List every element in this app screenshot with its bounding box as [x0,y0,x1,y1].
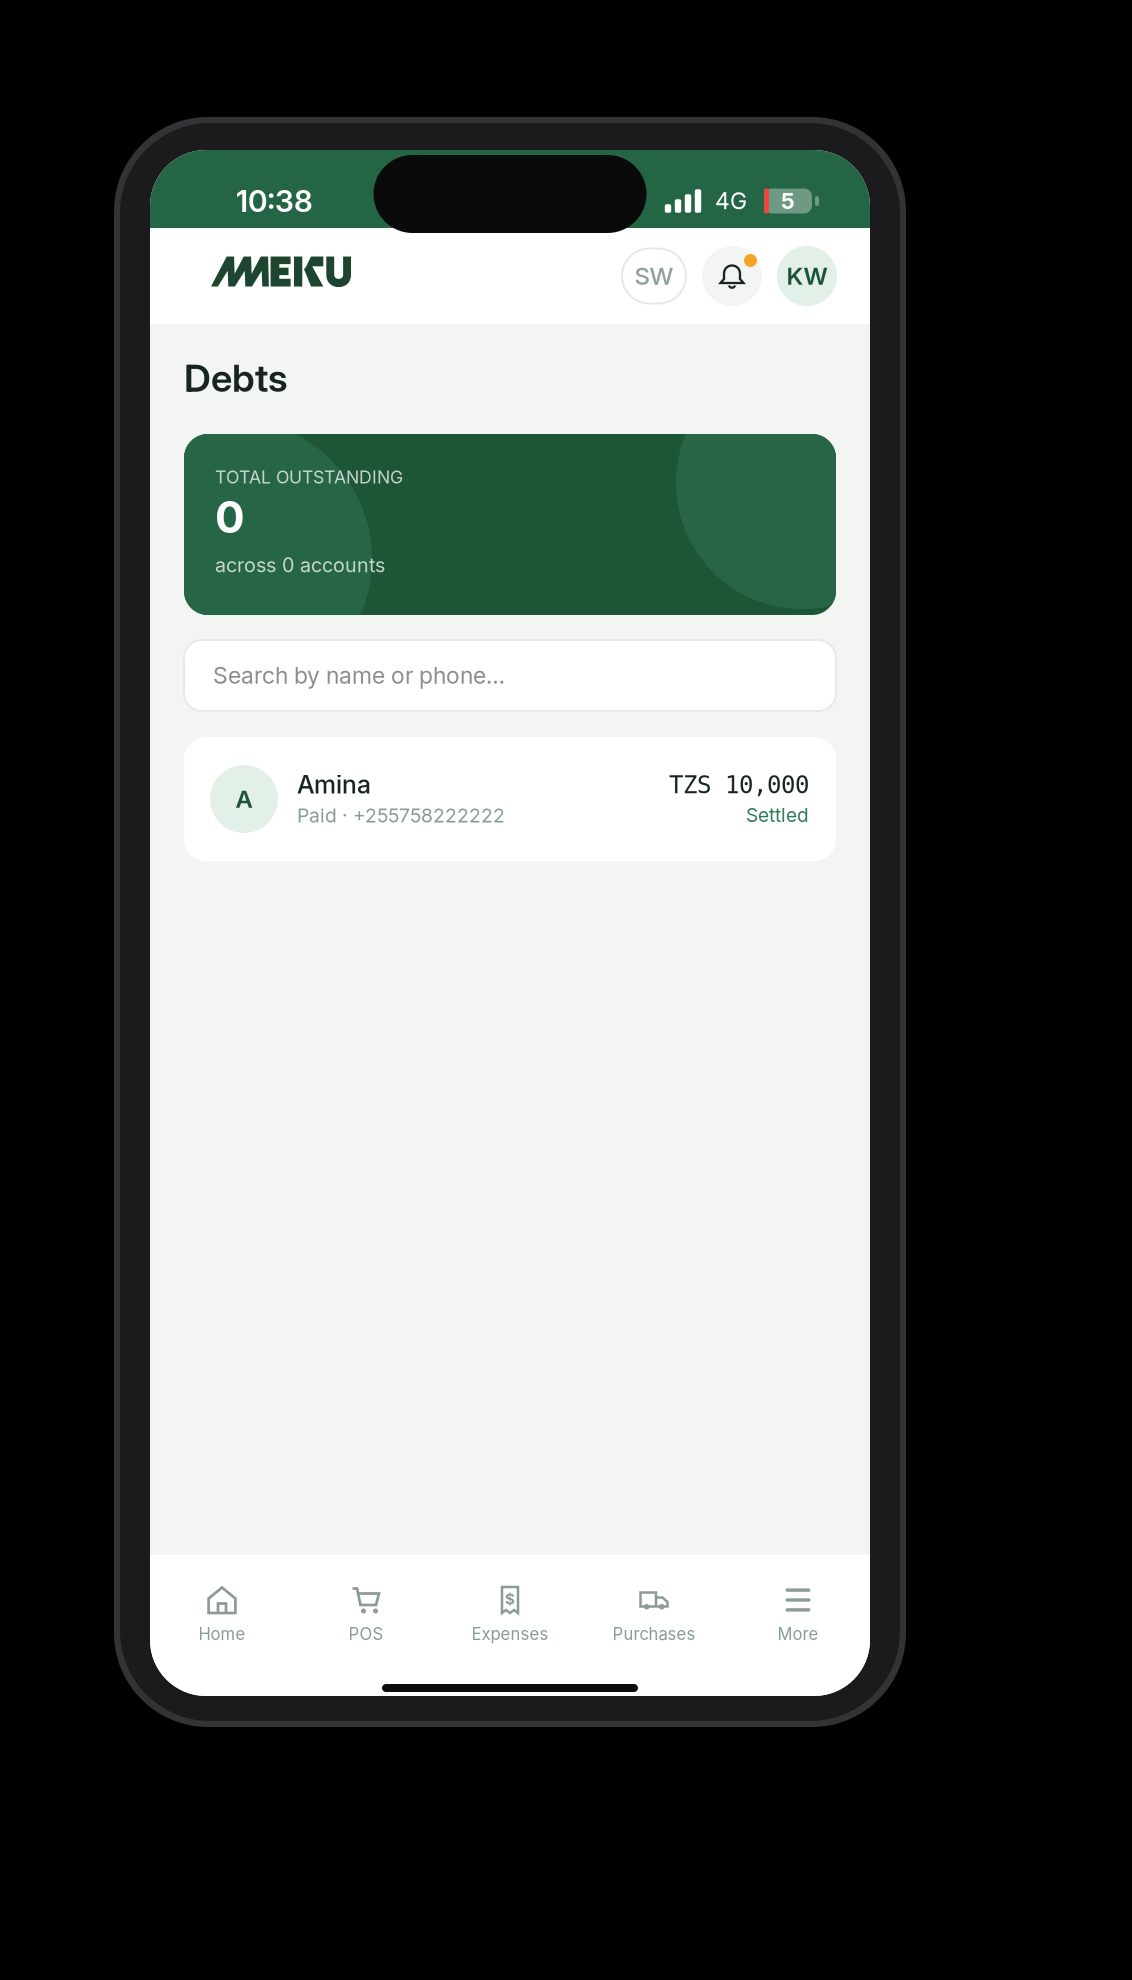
staticText: Debts [184,355,288,401]
button[interactable]: Home [150,1585,294,1649]
staticText: Purchases [612,1624,695,1644]
staticText: across 0 accounts [215,553,385,577]
button[interactable]: Purchases [582,1585,726,1649]
staticText: POS [348,1624,383,1644]
staticText: 5 [781,188,795,214]
staticText: TZS 10,000 [669,771,809,799]
staticText: Expenses [471,1624,548,1644]
staticText: More [777,1624,818,1644]
button[interactable]: Profile [777,246,837,306]
button[interactable]: MEKU [211,256,352,295]
staticText: TOTAL OUTSTANDING [215,466,403,488]
staticText: Search by name or phone… [213,662,505,689]
button[interactable]: POS [294,1585,438,1649]
staticText: KW [786,261,827,290]
button[interactable]: SW [622,248,686,303]
staticText: 10:38 [236,183,313,219]
staticText: $ [505,1590,515,1608]
staticText: A [235,784,252,813]
staticText: SW [634,261,673,290]
button[interactable]: Notifications [702,246,762,306]
staticText: Home [198,1624,245,1644]
staticText: Paid · +255758222222 [297,804,505,827]
button[interactable]: A [184,737,836,861]
staticText: 0 [215,490,245,544]
button[interactable]: $ [438,1585,582,1649]
staticText: 4G [715,187,747,215]
button[interactable]: More [726,1585,870,1649]
staticText: Settled [746,803,809,826]
staticText: Amina [297,769,371,800]
button[interactable]: Search by name or phone… [184,640,836,711]
